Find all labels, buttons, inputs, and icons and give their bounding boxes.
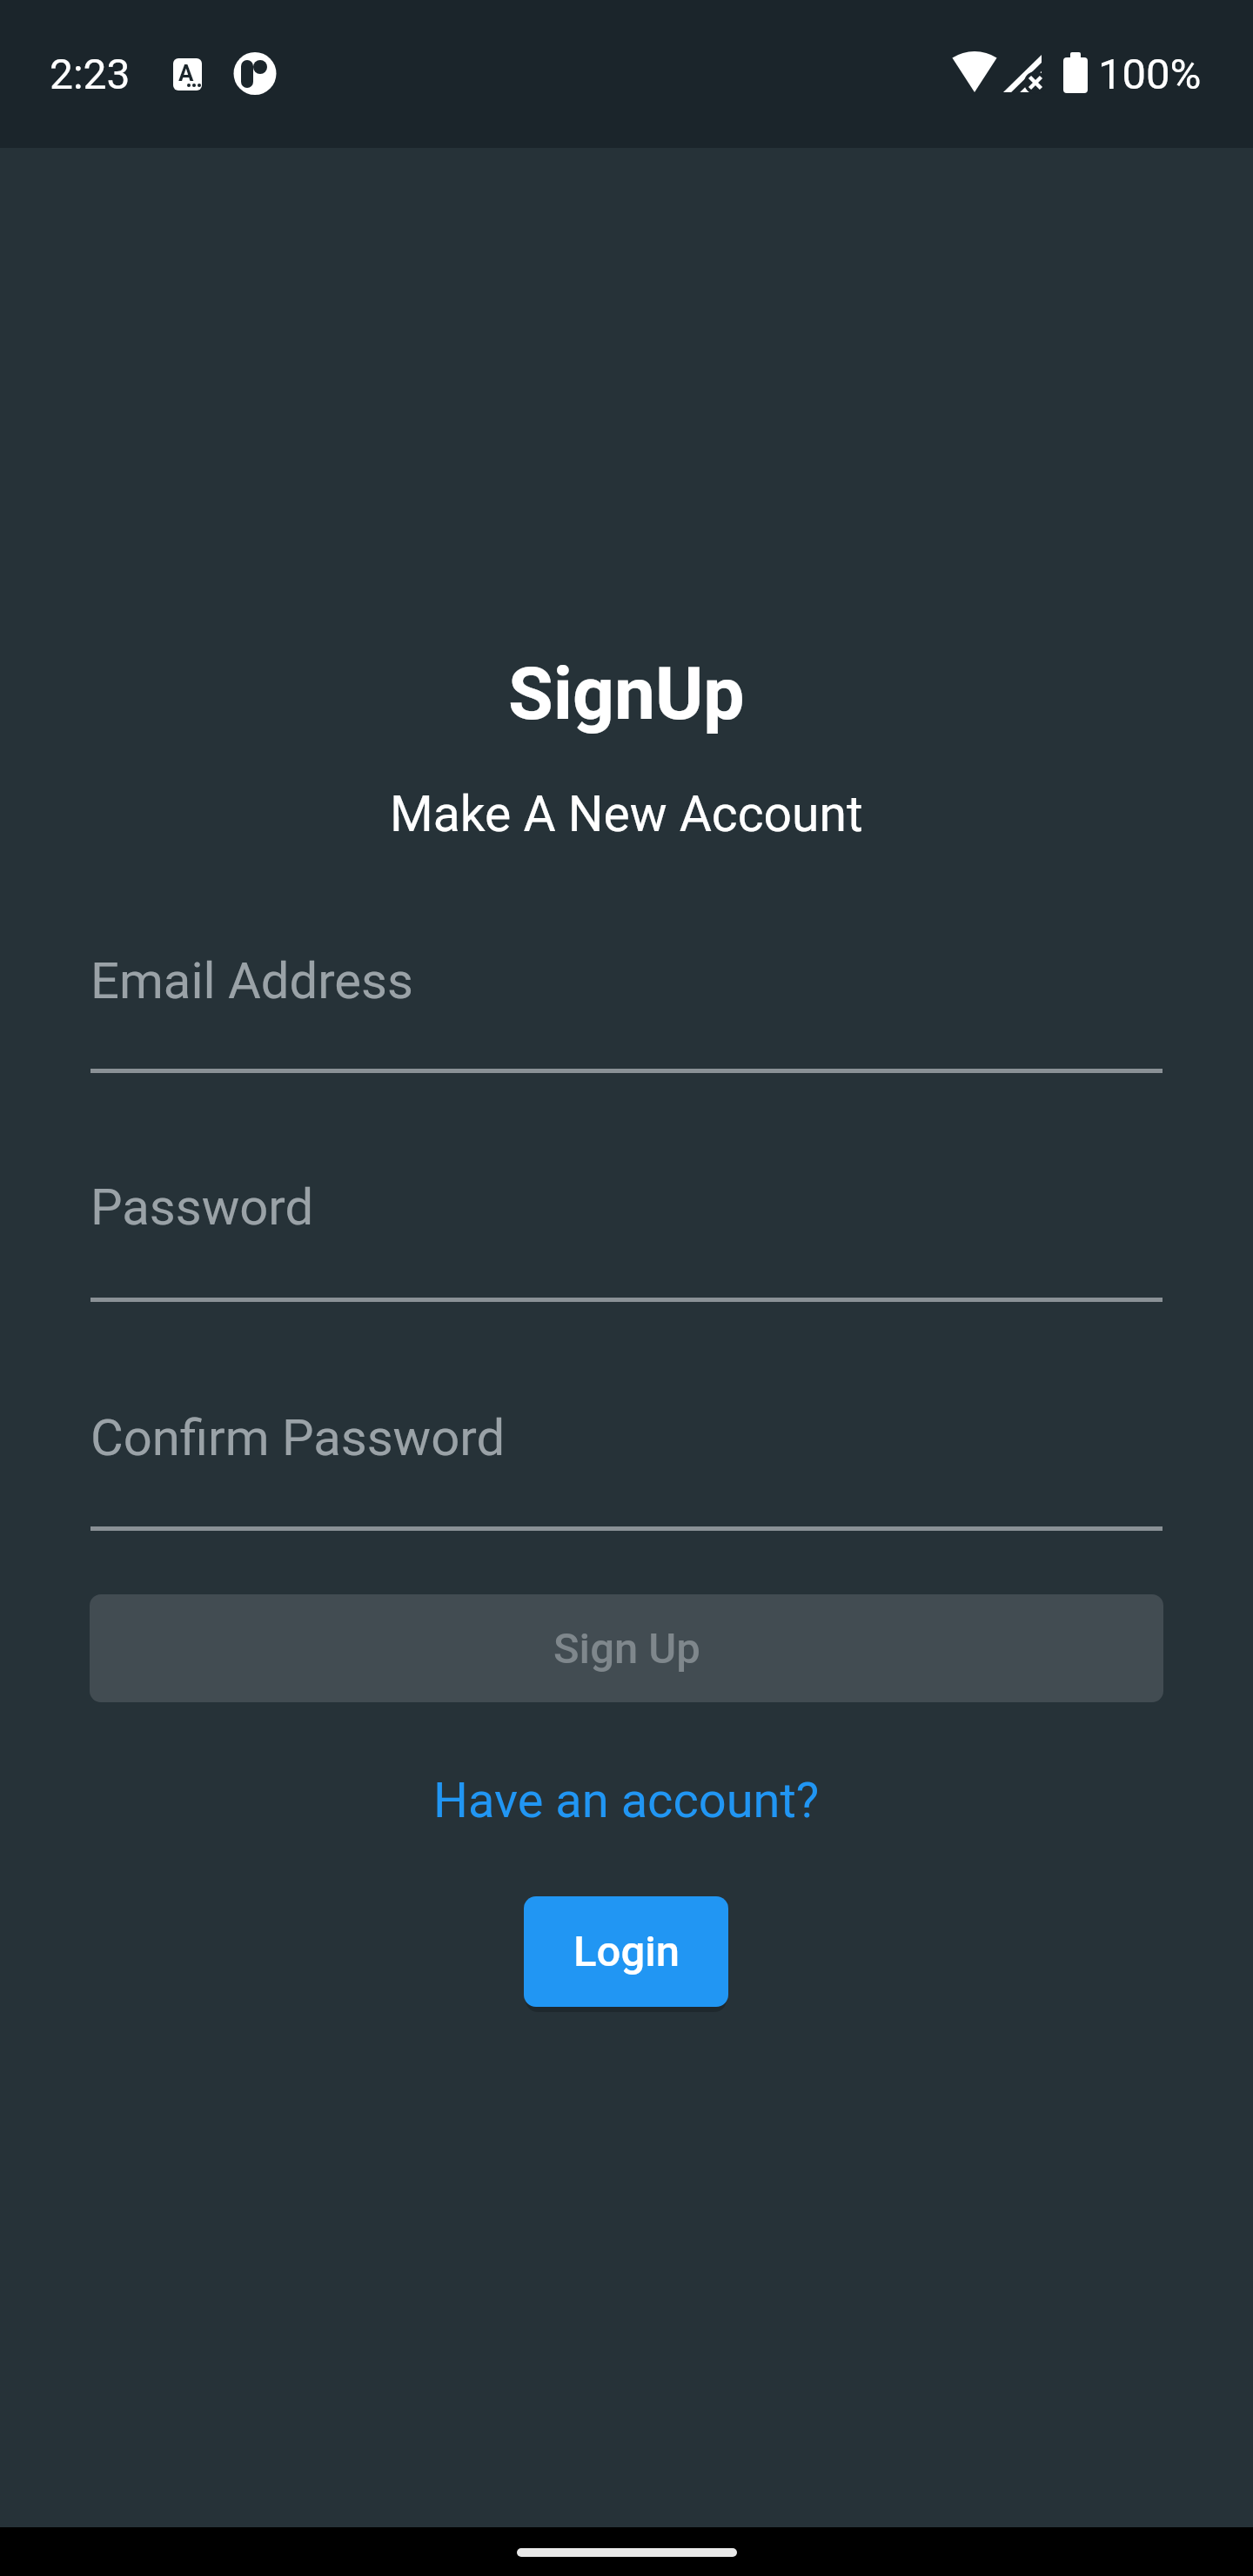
staticText: Email Address xyxy=(90,951,413,1010)
button[interactable]: Login xyxy=(524,1896,728,2007)
button[interactable]: Have an account? xyxy=(433,1772,820,1829)
button[interactable]: Email Address xyxy=(90,951,1163,1010)
staticText: Make A New Account xyxy=(390,785,863,843)
staticText: Sign Up xyxy=(553,1624,700,1674)
staticText: SignUp xyxy=(508,651,745,736)
staticText: 2:23 xyxy=(50,50,131,98)
button[interactable]: Sign Up xyxy=(90,1594,1163,1702)
button[interactable]: Confirm Password xyxy=(90,1408,1163,1467)
staticText: Password xyxy=(90,1177,314,1237)
staticText: 100% xyxy=(1098,50,1202,99)
staticText: Confirm Password xyxy=(90,1408,506,1467)
staticText: A xyxy=(178,60,194,86)
staticText: Login xyxy=(573,1927,680,1976)
button[interactable]: Password xyxy=(90,1177,1163,1237)
